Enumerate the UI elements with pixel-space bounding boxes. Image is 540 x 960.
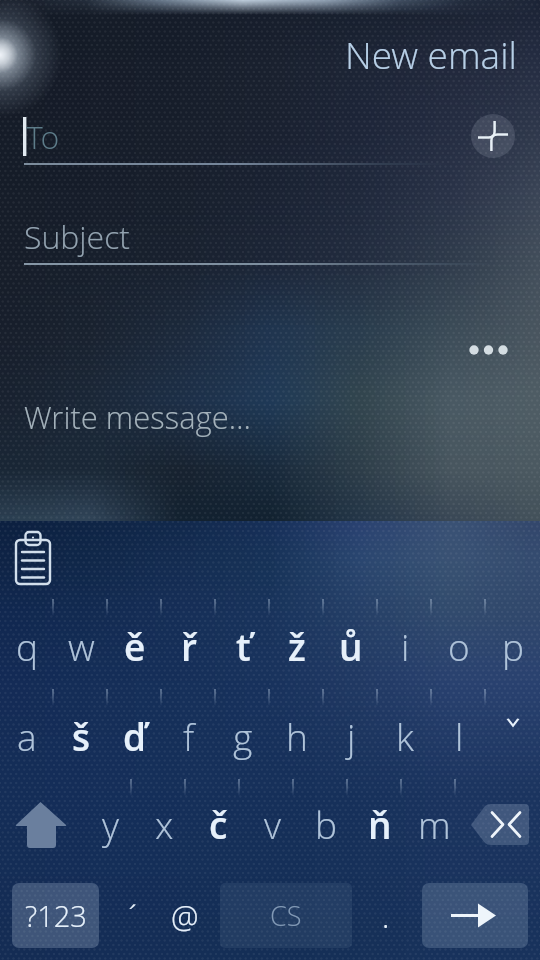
staticText: l — [455, 711, 464, 761]
staticText: x — [155, 799, 174, 849]
staticText: p — [502, 621, 525, 671]
button[interactable]: j — [324, 691, 378, 781]
staticText: j — [347, 711, 356, 761]
button[interactable]: m — [407, 779, 461, 869]
staticText: f — [183, 711, 195, 761]
button[interactable]: Backspace — [468, 800, 534, 850]
staticText: . — [382, 895, 390, 937]
button[interactable]: k — [378, 691, 432, 781]
button[interactable]: Write message… — [0, 392, 540, 442]
staticText: a — [17, 711, 37, 761]
staticText: ě — [124, 621, 146, 671]
button[interactable]: b — [299, 779, 353, 869]
button[interactable]: ň — [353, 779, 407, 869]
button[interactable]: h — [270, 691, 324, 781]
button[interactable]: č — [191, 779, 245, 869]
button[interactable]: Shift — [8, 794, 72, 856]
button[interactable]: ů — [324, 601, 378, 691]
button[interactable]: f — [162, 691, 216, 781]
button[interactable]: p — [486, 601, 540, 691]
staticText: ď — [123, 711, 147, 761]
staticText: To — [26, 115, 60, 159]
button[interactable]: q — [0, 601, 54, 691]
button[interactable]: ť — [216, 601, 270, 691]
staticText: ň — [368, 799, 392, 849]
button[interactable]: i — [378, 601, 432, 691]
staticText: ´ — [124, 895, 142, 936]
staticText: m — [418, 799, 451, 849]
button[interactable]: ř — [162, 601, 216, 691]
staticText: v — [264, 799, 281, 849]
staticText: CS — [270, 897, 302, 934]
staticText: k — [396, 711, 414, 761]
staticText: @ — [171, 895, 199, 937]
button[interactable]: ď — [108, 691, 162, 781]
staticText: w — [68, 621, 95, 671]
button[interactable]: l — [432, 691, 486, 781]
staticText: ť — [236, 621, 251, 671]
button[interactable]: @ — [157, 883, 212, 948]
button[interactable]: ž — [270, 601, 324, 691]
button[interactable]: Add recipient — [471, 114, 515, 158]
button[interactable]: Space — [220, 883, 352, 948]
button[interactable]: o — [432, 601, 486, 691]
staticText: Subject — [24, 215, 131, 259]
staticText: g — [233, 711, 253, 761]
staticText: ů — [339, 621, 363, 671]
staticText: q — [16, 621, 39, 671]
button[interactable]: New email — [317, 26, 517, 82]
button[interactable]: More options — [464, 338, 512, 362]
button[interactable]: š — [54, 691, 108, 781]
button[interactable]: a — [0, 691, 54, 781]
staticText: Write message… — [24, 396, 251, 438]
staticText: ž — [288, 621, 306, 671]
staticText: h — [286, 711, 308, 761]
button[interactable]: ?123 — [12, 883, 99, 948]
button[interactable]: Hide keyboard — [486, 696, 540, 750]
button[interactable]: Enter — [422, 883, 528, 948]
staticText: o — [448, 621, 470, 671]
staticText: y — [102, 799, 119, 849]
staticText: i — [401, 621, 410, 671]
staticText: ?123 — [25, 896, 87, 935]
button[interactable]: To — [0, 112, 540, 162]
button[interactable]: ´ — [105, 883, 160, 948]
button[interactable]: Subject — [0, 212, 540, 262]
button[interactable]: g — [216, 691, 270, 781]
staticText: New email — [345, 29, 517, 79]
staticText: b — [315, 799, 338, 849]
staticText: ř — [181, 621, 197, 671]
button[interactable]: Clipboard — [8, 528, 60, 590]
button[interactable]: v — [245, 779, 299, 869]
button[interactable]: y — [83, 779, 137, 869]
staticText: š — [72, 711, 91, 761]
staticText: č — [209, 799, 228, 849]
button[interactable]: w — [54, 601, 108, 691]
button[interactable]: . — [358, 883, 413, 948]
button[interactable]: ě — [108, 601, 162, 691]
button[interactable]: x — [137, 779, 191, 869]
